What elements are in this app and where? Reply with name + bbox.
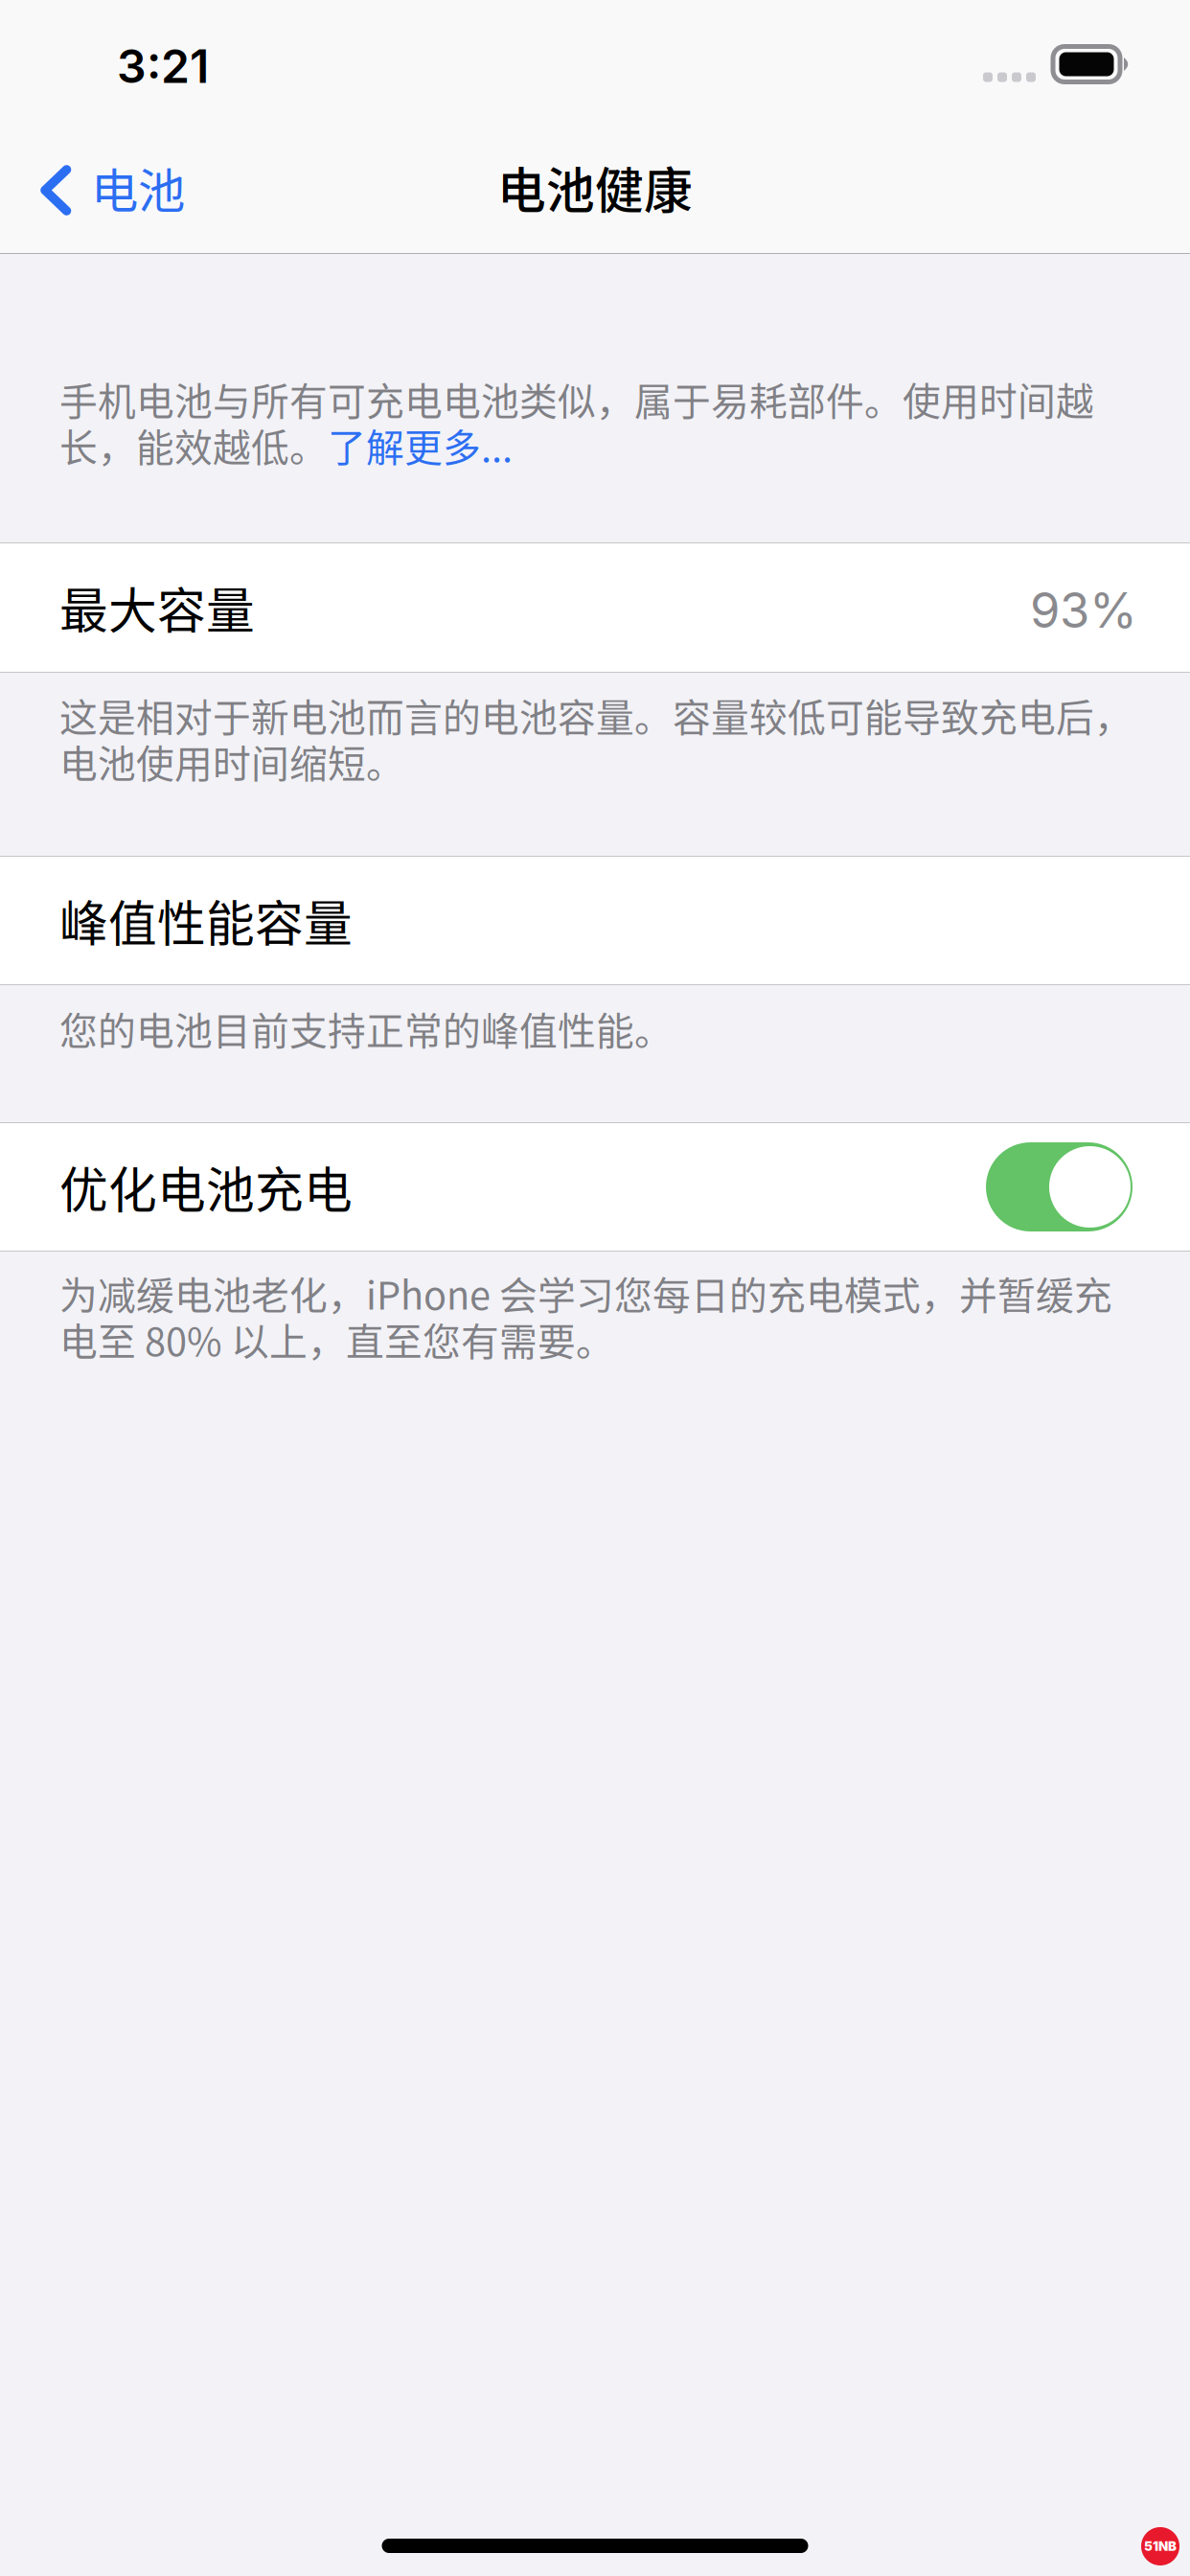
staticText: 51NB [1144,2539,1177,2554]
button[interactable]: 了解更多... [328,422,513,468]
staticText: 电池 [91,153,185,222]
staticText: 这是相对于新电池而言的电池容量。容量较低可能导致充电后，电池使用时间缩短。 [59,692,1133,785]
staticText: 长，能效越低。 [59,422,328,468]
button[interactable]: 电池 [0,126,210,253]
staticText: 电池健康 [497,152,693,223]
button[interactable]: 优化电池充电，已打开 [986,1142,1133,1231]
staticText: 优化电池充电 [59,1152,353,1222]
staticText: 手机电池与所有可充电电池类似，属于易耗部件。使用时间越 [59,376,1094,422]
staticText: 为减缓电池老化，iPhone 会学习您每日的充电模式，并暂缓充电至 80% 以上… [59,1270,1112,1362]
staticText: 3:21 [117,38,209,94]
staticText: 了解更多... [328,422,513,468]
button[interactable]: 优化电池充电 [0,1123,1190,1251]
staticText: 您的电池目前支持正常的峰值性能。 [59,1005,673,1052]
staticText: 93% [1030,581,1137,639]
staticText: 峰值性能容量 [59,885,353,956]
staticText: 最大容量 [59,572,255,643]
